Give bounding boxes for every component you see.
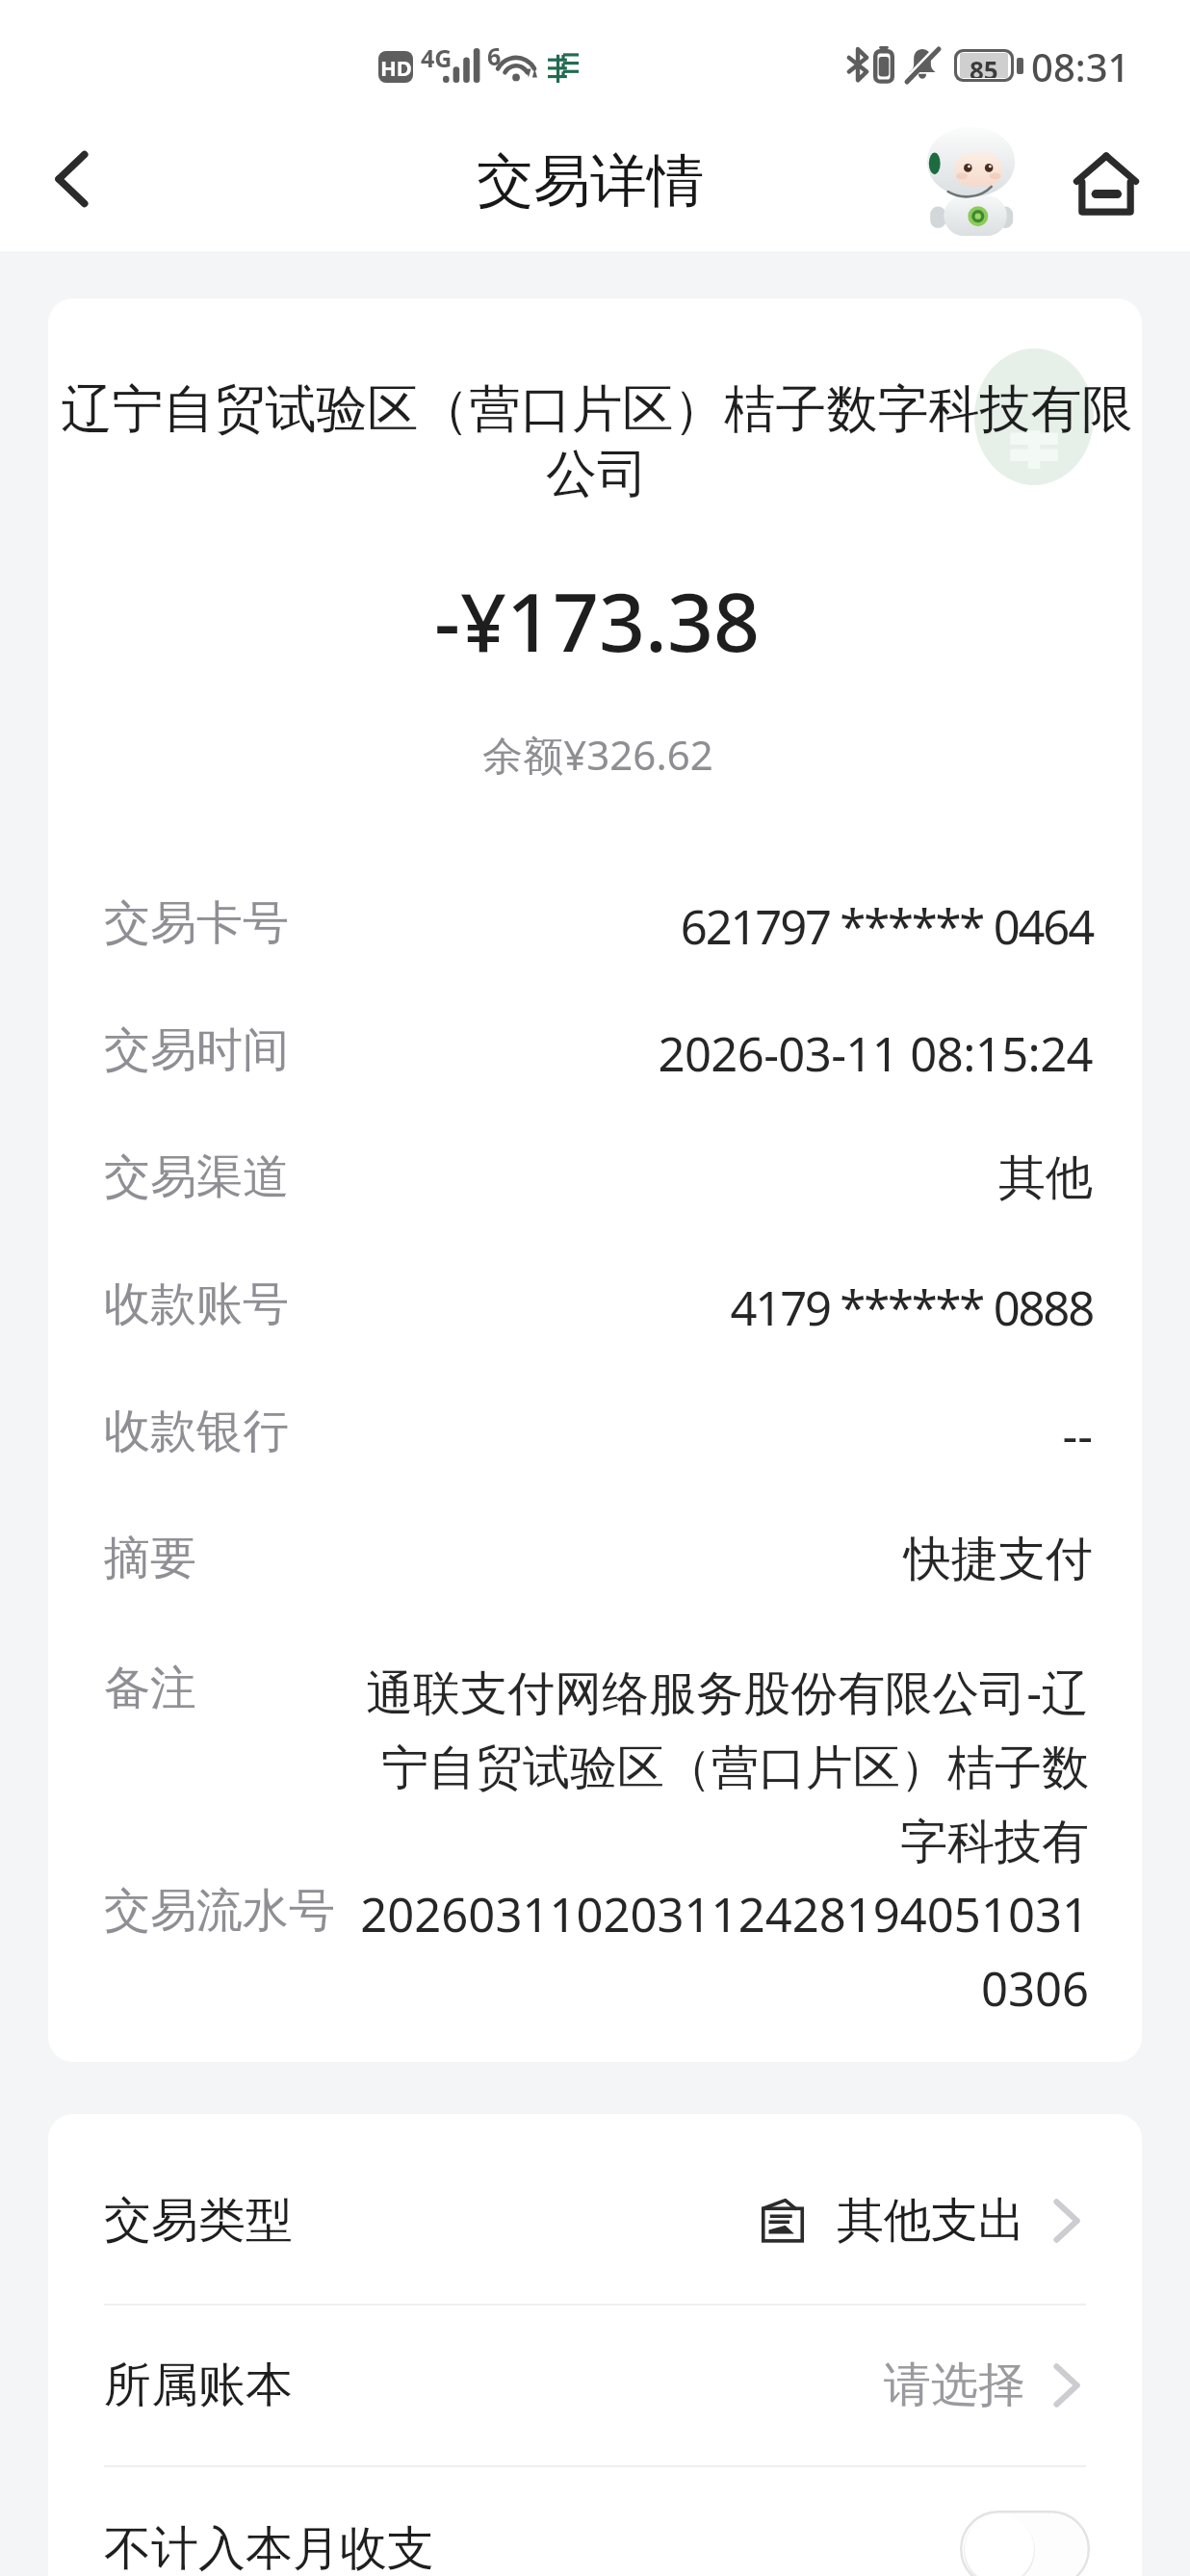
staticText: 85 xyxy=(970,53,998,78)
staticText: 交易类型 xyxy=(104,2191,293,2251)
staticText: 交易渠道 xyxy=(104,1148,289,1206)
staticText: 交易时间 xyxy=(104,1021,289,1079)
staticText: 其他 xyxy=(104,1148,1093,1208)
staticText: 其他支出 xyxy=(837,2191,1025,2251)
staticText: 摘要 xyxy=(104,1530,196,1587)
staticText: 辽宁自贸试验区（营口片区）桔子数字科技有限公司 xyxy=(50,377,1142,506)
staticText: 备注 xyxy=(104,1660,196,1717)
staticText: 交易详情 xyxy=(0,145,1185,217)
staticText: 通联支付网络服务股份有限公司-辽 宁自贸试验区（营口片区）桔子数 字科技有 xyxy=(104,1660,1089,1872)
staticText: HD xyxy=(380,53,412,82)
button[interactable]: Assistant xyxy=(920,121,1021,241)
staticText: 快捷支付 xyxy=(104,1530,1093,1589)
staticText: 4G xyxy=(421,41,453,74)
button[interactable]: 交易类型 xyxy=(48,2137,1142,2304)
staticText: 交易卡号 xyxy=(104,894,289,952)
staticText: 202603110203112428194051031 0306 xyxy=(104,1882,1089,2021)
staticText: 请选择 xyxy=(884,2356,1025,2415)
staticText: -¥173.38 xyxy=(50,565,1142,675)
staticText: 交易流水号 xyxy=(104,1882,335,1940)
staticText: 余额¥326.62 xyxy=(51,727,1142,782)
staticText: 不计入本月收支 xyxy=(104,2519,434,2576)
staticText: 收款账号 xyxy=(104,1275,289,1333)
button[interactable]: 不计入本月收支 xyxy=(48,2467,1142,2576)
button[interactable]: Home xyxy=(1063,142,1150,226)
staticText: 4179 ****** 0888 xyxy=(104,1275,1093,1340)
button[interactable]: Back xyxy=(25,132,119,226)
staticText: 08:31 xyxy=(1031,40,1130,92)
staticText: 6 xyxy=(487,39,502,72)
button[interactable]: 所属账本 xyxy=(48,2306,1142,2465)
staticText: 收款银行 xyxy=(104,1403,289,1460)
staticText: 621797 ****** 0464 xyxy=(104,894,1093,959)
staticText: -- xyxy=(104,1403,1093,1467)
staticText: 2026-03-11 08:15:24 xyxy=(104,1021,1093,1086)
staticText: 所属账本 xyxy=(104,2356,293,2415)
